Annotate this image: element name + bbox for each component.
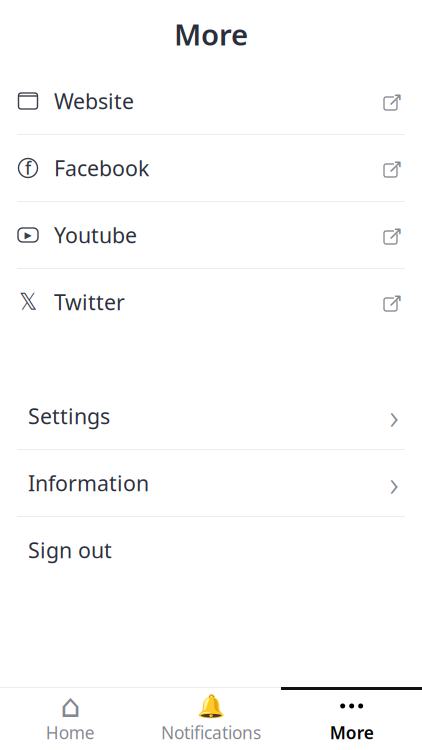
button[interactable]: ⌂	[0, 688, 141, 750]
staticText: Twitter	[54, 288, 125, 316]
button[interactable]: ▶	[0, 202, 422, 268]
staticText: ↗	[387, 222, 403, 244]
staticText: ↗	[387, 88, 403, 110]
staticText: More	[330, 721, 374, 744]
staticText: Home	[46, 721, 95, 744]
button[interactable]: Information	[0, 450, 422, 516]
staticText: ↗	[387, 155, 403, 177]
staticText: Information	[28, 469, 149, 497]
staticText: More	[174, 14, 248, 53]
staticText: ▶	[24, 230, 31, 240]
staticText: Settings	[28, 402, 110, 430]
button[interactable]: Sign out	[0, 517, 422, 583]
staticText: Youtube	[54, 221, 137, 249]
button[interactable]: More	[281, 688, 422, 750]
button[interactable]: 𝕏	[0, 269, 422, 335]
button[interactable]: Website	[0, 68, 422, 134]
staticText: Sign out	[28, 536, 112, 564]
staticText: ↗	[387, 289, 403, 311]
staticText: ›	[389, 393, 398, 439]
button[interactable]: 🔔	[141, 688, 281, 750]
staticText: Facebook	[54, 154, 149, 182]
staticText: ›	[389, 460, 398, 506]
staticText: f	[25, 156, 31, 179]
staticText: ⌂	[60, 688, 80, 724]
button[interactable]: Settings	[0, 383, 422, 449]
staticText: 🔔	[197, 693, 225, 719]
staticText: Notifications	[161, 721, 261, 744]
staticText: 𝕏	[19, 289, 37, 315]
staticText: Website	[54, 87, 134, 115]
button[interactable]: f	[0, 135, 422, 201]
